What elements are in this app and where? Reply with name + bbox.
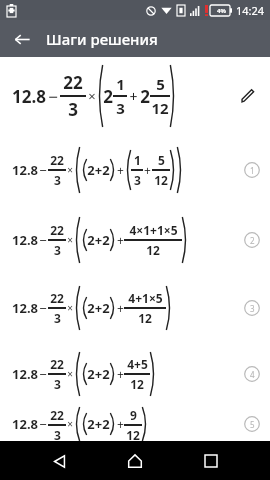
staticText: 2 bbox=[250, 235, 255, 246]
button[interactable]: Back bbox=[8, 25, 36, 53]
staticText: + bbox=[117, 366, 124, 382]
staticText: × bbox=[67, 163, 73, 177]
button[interactable]: 12.8 bbox=[0, 341, 270, 407]
staticText: 3 bbox=[54, 242, 61, 258]
button[interactable]: Step 3 bbox=[244, 300, 260, 316]
staticText: + bbox=[129, 87, 138, 106]
staticText: 5 bbox=[156, 74, 165, 94]
button[interactable]: 12.8 bbox=[0, 57, 270, 135]
staticText: 12.8 bbox=[12, 85, 46, 108]
staticText: × bbox=[67, 367, 73, 381]
staticText: 22 bbox=[50, 290, 64, 306]
staticText: × bbox=[67, 233, 73, 247]
staticText: 12.8 bbox=[12, 161, 38, 179]
staticText: 5 bbox=[158, 152, 165, 168]
staticText: 4 bbox=[250, 369, 255, 380]
button[interactable]: Back bbox=[42, 444, 76, 478]
staticText: 12.8 bbox=[12, 299, 38, 317]
staticText: 22 bbox=[50, 356, 64, 372]
staticText: − bbox=[39, 231, 47, 249]
staticText: 3 bbox=[54, 172, 61, 188]
staticText: 1 bbox=[250, 165, 255, 176]
staticText: 22 bbox=[50, 222, 64, 238]
staticText: 12 bbox=[154, 172, 168, 188]
staticText: + bbox=[117, 416, 124, 432]
staticText: 2+2 bbox=[87, 161, 110, 179]
staticText: 12 bbox=[151, 98, 169, 118]
staticText: 4% bbox=[217, 7, 226, 15]
button[interactable]: Edit expression bbox=[232, 81, 262, 111]
button[interactable]: Home bbox=[118, 444, 152, 478]
staticText: 22 bbox=[63, 71, 83, 94]
staticText: − bbox=[39, 161, 47, 179]
button[interactable]: Step 2 bbox=[244, 232, 260, 248]
staticText: − bbox=[39, 415, 47, 433]
staticText: 22 bbox=[50, 152, 64, 168]
staticText: Шаги решения bbox=[46, 29, 158, 49]
staticText: 12.8 bbox=[12, 365, 38, 383]
staticText: 12.8 bbox=[12, 415, 38, 433]
staticText: 12 bbox=[130, 376, 144, 392]
staticText: 2 bbox=[140, 85, 150, 108]
staticText: 2+2 bbox=[87, 231, 110, 249]
button[interactable]: Step 4 bbox=[244, 366, 260, 382]
button[interactable]: Recent apps bbox=[194, 444, 228, 478]
staticText: − bbox=[39, 365, 47, 383]
staticText: 12 bbox=[138, 310, 152, 326]
button[interactable]: 12.8 bbox=[0, 135, 270, 205]
staticText: 4+5 bbox=[127, 356, 148, 372]
staticText: 4+1×5 bbox=[128, 290, 163, 306]
staticText: 3 bbox=[54, 427, 61, 441]
staticText: 3 bbox=[54, 310, 61, 326]
staticText: 3 bbox=[68, 98, 78, 121]
staticText: + bbox=[117, 300, 124, 316]
staticText: + bbox=[117, 162, 124, 178]
staticText: × bbox=[67, 301, 73, 315]
staticText: 22 bbox=[50, 407, 64, 423]
staticText: × bbox=[88, 87, 96, 105]
staticText: − bbox=[39, 299, 47, 317]
staticText: 3 bbox=[54, 376, 61, 392]
button[interactable]: Step 5 bbox=[244, 416, 260, 432]
staticText: 4×1+1×5 bbox=[129, 222, 178, 238]
staticText: + bbox=[144, 162, 151, 178]
staticText: 2+2 bbox=[87, 299, 110, 317]
staticText: 2+2 bbox=[87, 365, 110, 383]
staticText: 3 bbox=[134, 172, 141, 188]
staticText: 14:24 bbox=[236, 3, 265, 18]
staticText: 12 bbox=[126, 427, 140, 441]
staticText: − bbox=[48, 85, 58, 108]
staticText: + bbox=[117, 232, 124, 248]
staticText: 1 bbox=[116, 74, 125, 94]
button[interactable]: 12.8 bbox=[0, 205, 270, 275]
staticText: 5 bbox=[250, 419, 255, 430]
button[interactable]: 12.8 bbox=[0, 407, 270, 441]
staticText: 12 bbox=[146, 242, 160, 258]
staticText: 2 bbox=[103, 85, 113, 108]
staticText: 2+2 bbox=[87, 415, 110, 433]
staticText: × bbox=[67, 417, 73, 431]
button[interactable]: Step 1 bbox=[244, 162, 260, 178]
button[interactable]: 12.8 bbox=[0, 275, 270, 341]
staticText: 9 bbox=[130, 407, 137, 423]
staticText: 3 bbox=[116, 98, 125, 118]
staticText: 3 bbox=[250, 303, 255, 314]
staticText: 12.8 bbox=[12, 231, 38, 249]
staticText: 1 bbox=[134, 152, 141, 168]
